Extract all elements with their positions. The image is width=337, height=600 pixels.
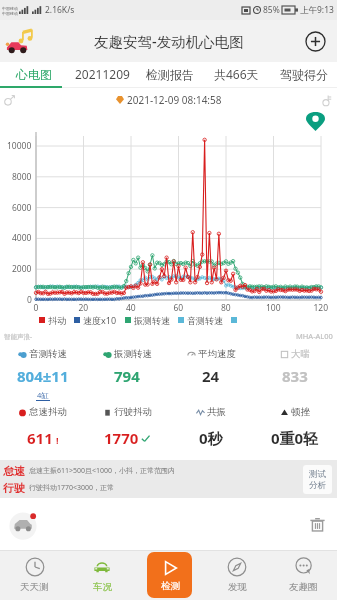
staticText: 友趣圈 — [289, 581, 318, 593]
staticText: 833 — [282, 366, 308, 386]
staticText: 4缸 — [37, 390, 49, 400]
staticText: 平均速度 — [198, 348, 236, 360]
button[interactable]: 测试 — [303, 465, 332, 494]
button[interactable]: 振测转速 — [85, 344, 169, 364]
staticText: 上午9:13 — [300, 4, 334, 16]
staticText: 振测转速 — [134, 315, 170, 326]
button[interactable]: 检测报告 — [136, 62, 203, 86]
staticText: 行驶抖动 — [114, 406, 152, 418]
staticText: 怠速抖动 — [29, 406, 67, 418]
button[interactable]: 天天测 — [0, 550, 68, 600]
staticText: 24 — [202, 366, 220, 386]
button[interactable]: 友趣圈 — [270, 550, 337, 600]
staticText: 振测转速 — [114, 348, 152, 360]
staticText: 共振 — [207, 406, 226, 418]
staticText: 0秒 — [199, 428, 223, 448]
staticText: 音测转速 — [187, 315, 223, 326]
staticText: 速度x10 — [83, 314, 117, 326]
button[interactable]: 行驶抖动 — [85, 402, 169, 422]
staticText: 发现 — [228, 581, 247, 593]
button[interactable]: 心电图 — [0, 62, 68, 86]
staticText: 85% — [263, 4, 280, 16]
button[interactable]: 顿挫 — [253, 402, 337, 422]
button[interactable]: 检测 — [136, 550, 203, 600]
staticText: 怠速 — [3, 464, 25, 478]
staticText: 检测 — [161, 580, 180, 592]
staticText: 怠速主振611>500且<1000，小抖，正常范围内 — [29, 466, 176, 476]
button[interactable]: 20211209 — [68, 62, 136, 86]
staticText: 测试 — [309, 469, 326, 480]
staticText: 2021-12-09 08:14:58 — [127, 93, 222, 107]
staticText: 中国移动 — [2, 11, 18, 16]
staticText: 天天测 — [20, 581, 49, 593]
button[interactable]: 大喘 — [253, 344, 337, 364]
staticText: 共466天 — [214, 66, 259, 82]
button[interactable]: 音测转速 — [0, 344, 85, 364]
staticText: 心电图 — [16, 67, 52, 82]
staticText: 车况 — [93, 581, 112, 593]
button[interactable]: 平均速度 — [169, 344, 253, 364]
staticText: 驾驶得分 — [280, 67, 328, 82]
button[interactable]: Location — [306, 112, 325, 131]
button[interactable]: 共466天 — [203, 62, 270, 86]
staticText: 大喘 — [291, 348, 310, 360]
staticText: 804±11 — [17, 366, 69, 386]
staticText: 音测转速 — [29, 348, 67, 360]
staticText: 20211209 — [75, 66, 130, 82]
staticText: 检测报告 — [146, 67, 194, 82]
staticText: 抖动 — [48, 315, 66, 326]
button[interactable]: 驾驶得分 — [270, 62, 337, 86]
staticText: ! — [56, 434, 59, 446]
button[interactable]: Vehicle — [8, 507, 42, 541]
staticText: 智能声浪- — [4, 332, 33, 341]
button[interactable]: Add — [305, 31, 326, 52]
staticText: 中国移动 — [2, 6, 18, 11]
staticText: 友趣安驾-发动机心电图 — [94, 31, 244, 51]
staticText: 611 — [27, 428, 53, 448]
button[interactable]: 怠速抖动 — [0, 402, 85, 422]
staticText: 2.16K/s — [45, 4, 75, 16]
staticText: 1770 — [104, 428, 139, 448]
button[interactable]: 共振 — [169, 402, 253, 422]
staticText: 行驶抖动1770<3000，正常 — [29, 483, 115, 493]
staticText: 794 — [114, 366, 140, 386]
staticText: MHA-AL00 — [296, 331, 333, 341]
button[interactable]: 发现 — [203, 550, 270, 600]
staticText: 顿挫 — [291, 406, 310, 418]
button[interactable]: Delete — [309, 516, 326, 533]
staticText: 分析 — [309, 480, 326, 491]
staticText: 行驶 — [3, 481, 25, 495]
button[interactable]: 车况 — [68, 550, 136, 600]
staticText: 0重0轻 — [271, 428, 319, 448]
